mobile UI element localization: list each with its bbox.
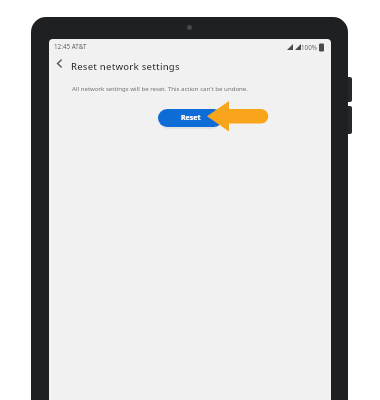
staticText: All network settings will be reset. This… bbox=[72, 84, 248, 92]
staticText: Reset network settings bbox=[71, 60, 180, 73]
staticText: 12:45 AT&T bbox=[54, 42, 87, 51]
staticText: 100% bbox=[301, 43, 318, 52]
staticText: Reset bbox=[181, 113, 201, 123]
button[interactable]: Reset network settings bbox=[49, 59, 209, 74]
button[interactable]: Reset bbox=[158, 109, 223, 127]
